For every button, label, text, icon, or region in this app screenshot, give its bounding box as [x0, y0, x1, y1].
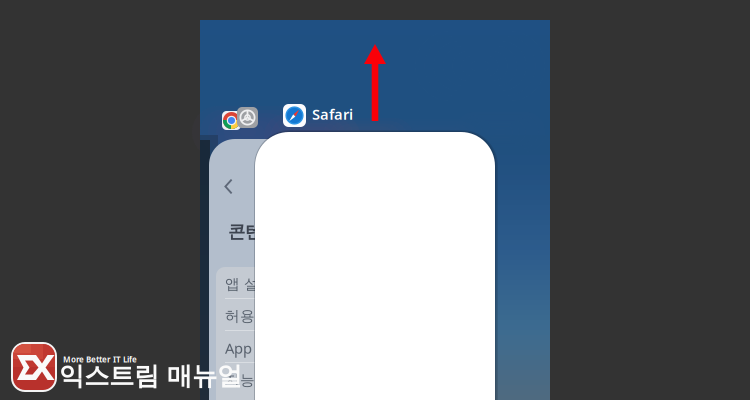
button[interactable]: 허용된 앱 [225, 307, 375, 325]
staticText: More Better IT Life [63, 354, 137, 365]
staticText: 앱 설치 허용 [225, 275, 308, 293]
staticText: Safari [312, 104, 353, 124]
button[interactable]: Back [223, 178, 236, 195]
staticText: 허용된 앱 [225, 307, 289, 325]
staticText: 익스트림 매뉴얼 [59, 360, 242, 391]
button[interactable]: 지능형 웹 [225, 371, 375, 389]
button[interactable]: 앱 설치 허용 [225, 275, 375, 293]
staticText: App Store [225, 338, 292, 358]
button[interactable]: App Store [225, 339, 375, 357]
staticText: 지능형 웹 [225, 371, 289, 389]
staticText: 콘텐츠 및 개인정보 [228, 221, 374, 243]
